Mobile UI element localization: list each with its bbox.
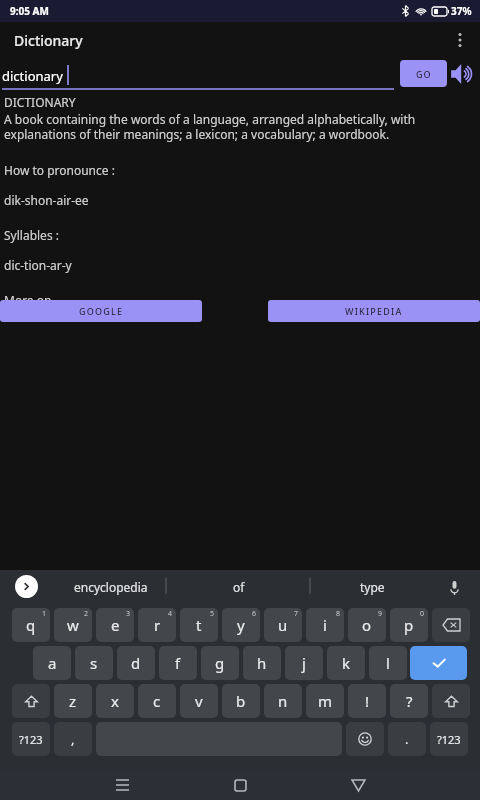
button[interactable]: Recents xyxy=(100,770,144,800)
button[interactable]: y xyxy=(222,608,260,642)
staticText: 0 xyxy=(420,609,425,619)
button[interactable]: p xyxy=(390,608,428,642)
button[interactable]: x xyxy=(96,684,134,718)
button[interactable]: m xyxy=(306,684,344,718)
button[interactable]: o xyxy=(348,608,386,642)
staticText: WIKIPEDIA xyxy=(345,305,403,317)
button[interactable]: a xyxy=(33,646,71,680)
button[interactable]: Emoji xyxy=(346,722,384,756)
button[interactable]: encyclopedia xyxy=(48,572,173,602)
button[interactable]: i xyxy=(306,608,344,642)
button[interactable]: r xyxy=(138,608,176,642)
button[interactable]: Voice input xyxy=(440,574,468,602)
staticText: dic-tion-ar-y xyxy=(4,257,72,273)
staticText: type xyxy=(360,579,385,595)
button[interactable]: d xyxy=(117,646,155,680)
staticText: k xyxy=(342,653,351,673)
button[interactable]: Shift xyxy=(12,684,50,718)
staticText: 37% xyxy=(451,4,472,18)
button[interactable]: n xyxy=(264,684,302,718)
staticText: l xyxy=(386,653,390,673)
button[interactable]: , xyxy=(54,722,92,756)
button[interactable]: dictionary xyxy=(2,62,394,90)
staticText: 4 xyxy=(168,609,173,619)
button[interactable]: w xyxy=(54,608,92,642)
button[interactable]: Backspace xyxy=(432,608,470,642)
button[interactable]: k xyxy=(327,646,365,680)
staticText: A book containing the words of a languag… xyxy=(4,111,478,142)
button[interactable]: Back xyxy=(336,770,380,800)
button[interactable]: f xyxy=(159,646,197,680)
staticText: u xyxy=(278,615,288,635)
button[interactable]: ?123 xyxy=(12,722,50,756)
staticText: i xyxy=(323,615,327,635)
staticText: 9 xyxy=(378,609,383,619)
staticText: encyclopedia xyxy=(74,579,148,595)
staticText: h xyxy=(257,653,267,673)
button[interactable]: u xyxy=(264,608,302,642)
staticText: ? xyxy=(406,691,413,711)
staticText: q xyxy=(26,615,36,635)
staticText: p xyxy=(404,615,414,635)
button[interactable]: Speak word xyxy=(449,58,479,90)
staticText: m xyxy=(318,691,333,711)
staticText: ?123 xyxy=(437,732,461,747)
button[interactable]: h xyxy=(243,646,281,680)
staticText: a xyxy=(48,653,57,673)
staticText: y xyxy=(237,615,245,635)
staticText: z xyxy=(69,691,77,711)
button[interactable]: More suggestions xyxy=(15,575,38,598)
button[interactable]: More options xyxy=(440,22,480,58)
button[interactable]: ? xyxy=(390,684,428,718)
staticText: Dictionary xyxy=(14,31,83,50)
staticText: c xyxy=(153,691,161,711)
staticText: More on xyxy=(4,292,52,308)
staticText: GOOGLE xyxy=(79,305,124,317)
staticText: 7 xyxy=(294,609,299,619)
staticText: Syllables : xyxy=(4,227,59,243)
staticText: DICTIONARY xyxy=(4,94,76,110)
staticText: o xyxy=(362,615,372,635)
staticText: e xyxy=(111,615,120,635)
button[interactable]: type xyxy=(305,572,440,602)
staticText: n xyxy=(278,691,288,711)
button[interactable]: Enter xyxy=(410,646,467,680)
button[interactable]: b xyxy=(222,684,260,718)
button[interactable]: ?123 xyxy=(430,722,468,756)
staticText: x xyxy=(111,691,119,711)
button[interactable]: ! xyxy=(348,684,386,718)
button[interactable]: . xyxy=(388,722,426,756)
button[interactable]: z xyxy=(54,684,92,718)
button[interactable]: l xyxy=(369,646,407,680)
button[interactable]: WIKIPEDIA xyxy=(268,300,480,322)
button[interactable]: v xyxy=(180,684,218,718)
staticText: w xyxy=(67,615,79,635)
staticText: d xyxy=(131,653,141,673)
button[interactable]: g xyxy=(201,646,239,680)
staticText: f xyxy=(175,653,181,673)
staticText: 1 xyxy=(42,609,47,619)
staticText: 8 xyxy=(336,609,341,619)
staticText: GO xyxy=(416,68,432,80)
staticText: 5 xyxy=(210,609,215,619)
button[interactable]: GO xyxy=(400,60,447,87)
staticText: j xyxy=(302,653,306,673)
staticText: ?123 xyxy=(19,732,43,747)
button[interactable]: s xyxy=(75,646,113,680)
staticText: 2 xyxy=(84,609,89,619)
staticText: b xyxy=(236,691,246,711)
staticText: 9:05 AM xyxy=(10,4,49,18)
button[interactable]: c xyxy=(138,684,176,718)
button[interactable]: q xyxy=(12,608,50,642)
button[interactable]: Home xyxy=(218,770,262,800)
button[interactable]: of xyxy=(175,572,303,602)
button[interactable]: GOOGLE xyxy=(0,300,202,322)
staticText: 3 xyxy=(126,609,131,619)
staticText: dictionary xyxy=(2,67,63,85)
button[interactable]: Shift xyxy=(432,684,470,718)
button[interactable]: t xyxy=(180,608,218,642)
staticText: of xyxy=(233,579,245,595)
button[interactable]: e xyxy=(96,608,134,642)
button[interactable]: j xyxy=(285,646,323,680)
